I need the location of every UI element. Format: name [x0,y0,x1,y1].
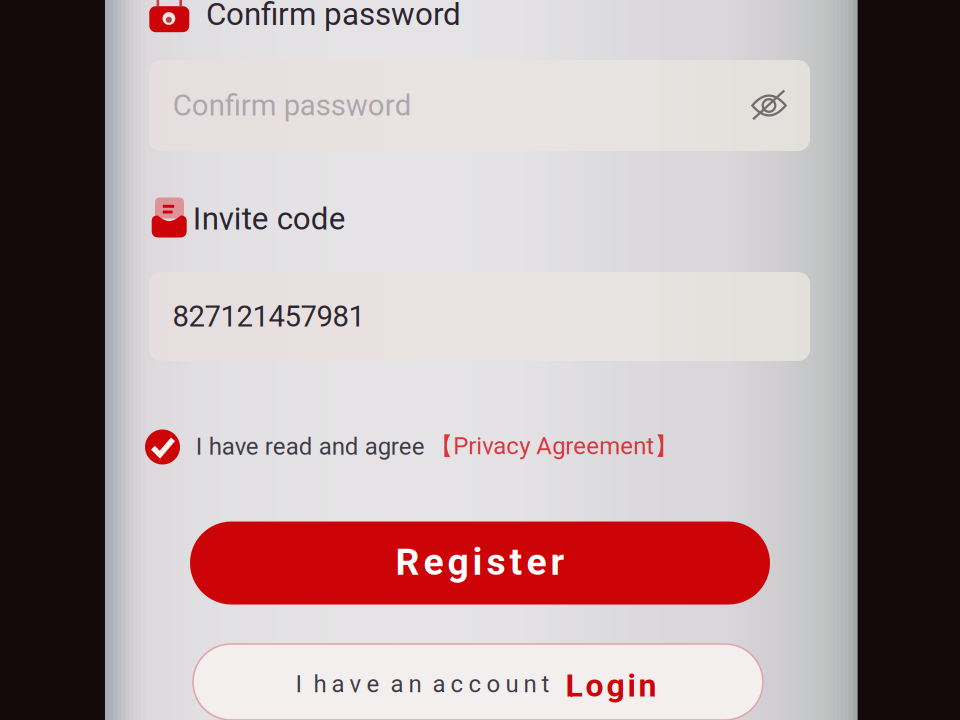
staticText: I have read and agree [196,432,425,461]
staticText: Confirm password [173,88,412,123]
button[interactable]: I h a v e a n a c c o u n t [193,644,763,720]
button[interactable]: I have read and agree [145,423,670,470]
staticText: 827121457981 [172,299,364,334]
staticText: 【Privacy Agreement】 [429,431,678,461]
staticText: I h a v e a n a c c o u n t [295,670,549,698]
staticText: Invite code [193,200,346,237]
staticText: R e g i s t e r [395,540,564,584]
staticText: Confirm password [206,0,461,33]
button[interactable]: R e g i s t e r [190,521,770,604]
staticText: L o g i n [566,667,657,704]
